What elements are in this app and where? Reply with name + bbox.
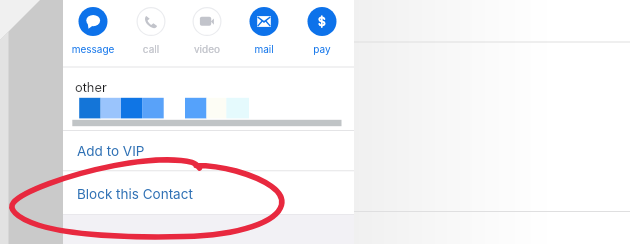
button[interactable]: Message <box>65 3 121 61</box>
other: Highlight <box>0 0 630 244</box>
staticText: message <box>65 43 121 59</box>
button[interactable]: Mail <box>236 3 292 61</box>
staticText: Add to VIP <box>77 143 145 159</box>
staticText: pay <box>294 43 350 59</box>
button[interactable]: Call <box>123 3 179 61</box>
button[interactable]: Pay <box>294 3 350 61</box>
staticText: Block this Contact <box>77 186 193 202</box>
staticText: call <box>123 43 179 59</box>
button[interactable]: Add to VIP <box>63 131 354 171</box>
staticText: video <box>179 43 235 59</box>
staticText: other <box>75 80 107 95</box>
staticText: mail <box>236 43 292 59</box>
button[interactable]: Block this Contact <box>63 171 354 214</box>
button[interactable]: Video <box>179 3 235 61</box>
